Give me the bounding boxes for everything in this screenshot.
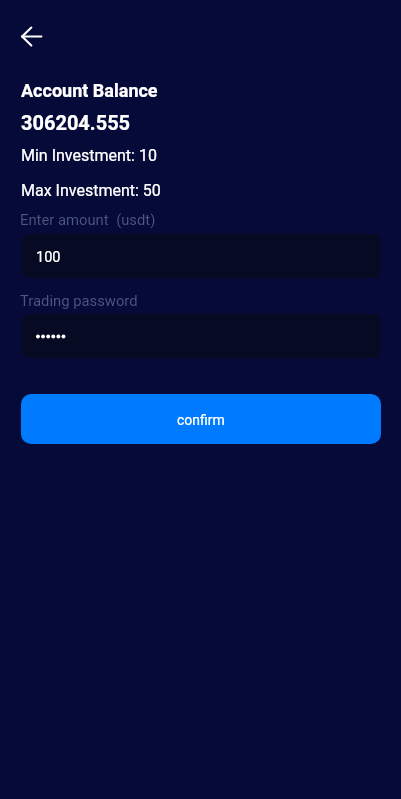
- button[interactable]: [21, 314, 381, 358]
- staticText: confirm: [177, 412, 225, 428]
- staticText: Enter amount (usdt): [20, 211, 156, 228]
- button[interactable]: 100: [21, 234, 381, 278]
- button[interactable]: Back: [15, 19, 49, 53]
- staticText: Max Investment: 50: [21, 181, 161, 200]
- staticText: Min Investment: 10: [21, 146, 157, 165]
- staticText: 306204.555: [21, 111, 131, 134]
- staticText: Trading password: [20, 292, 138, 309]
- staticText: Account Balance: [21, 80, 158, 101]
- staticText: 100: [36, 249, 61, 266]
- button[interactable]: confirm: [21, 394, 381, 444]
